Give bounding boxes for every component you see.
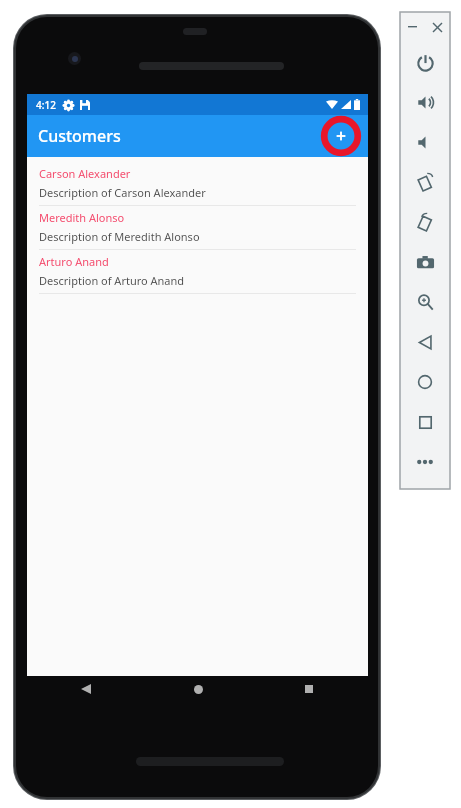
button[interactable]: Zoom [400, 282, 450, 322]
button[interactable]: Rotate left [400, 162, 450, 202]
button[interactable]: Arturo Anand [27, 254, 368, 298]
button[interactable]: Take screenshot [400, 242, 450, 282]
staticText: Description of Arturo Anand [39, 273, 185, 288]
button[interactable]: Carson Alexander [27, 166, 368, 210]
button[interactable]: Add customer [320, 115, 362, 157]
staticText: Arturo Anand [39, 254, 109, 269]
button[interactable]: Recents [296, 676, 322, 702]
button[interactable]: Rotate right [400, 202, 450, 242]
button[interactable]: Back [73, 676, 99, 702]
button[interactable]: Minimize [400, 14, 425, 40]
button[interactable]: Volume up [400, 82, 450, 122]
button[interactable]: Home [400, 362, 450, 402]
button[interactable]: Back [400, 322, 450, 362]
button[interactable]: Volume down [400, 122, 450, 162]
staticText: Description of Meredith Alonso [39, 229, 200, 244]
button[interactable]: Close [425, 14, 450, 40]
staticText: Customers [38, 125, 121, 147]
button[interactable]: More [400, 442, 450, 482]
staticText: Carson Alexander [39, 166, 131, 181]
staticText: 4:12 [36, 98, 56, 112]
button[interactable]: Overview [400, 402, 450, 442]
button[interactable]: Power [400, 42, 450, 82]
staticText: Description of Carson Alexander [39, 185, 206, 200]
button[interactable]: Meredith Alonso [27, 210, 368, 254]
button[interactable]: Home [185, 676, 211, 702]
staticText: Meredith Alonso [39, 210, 125, 225]
